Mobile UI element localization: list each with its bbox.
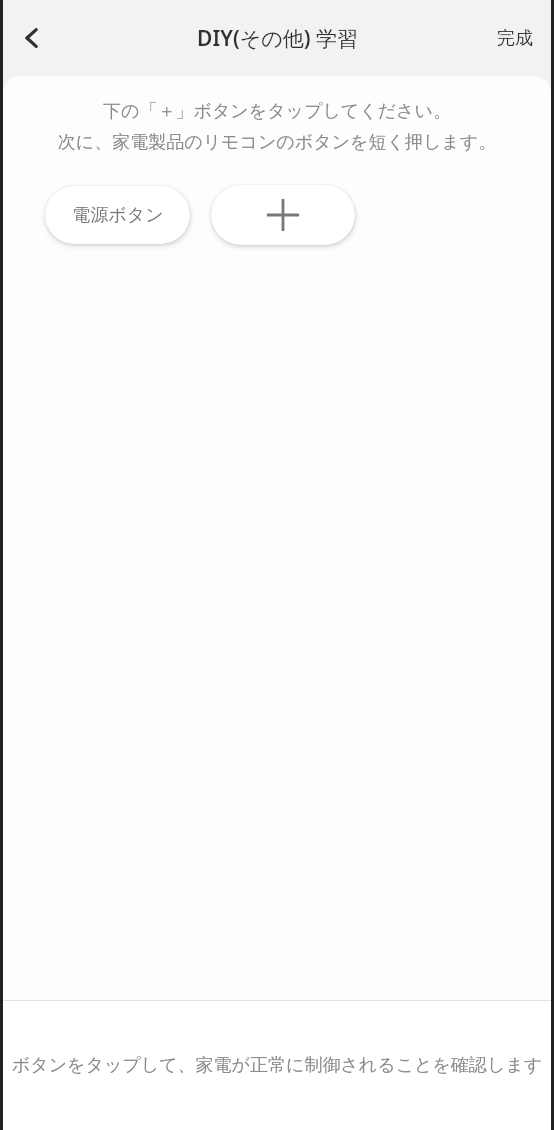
button[interactable]: Back [12,16,56,60]
button[interactable]: 完成 [487,19,543,58]
staticText: 完成 [497,27,533,50]
staticText: 下の「＋」ボタンをタップしてください。 次に、家電製品のリモコンのボタンを短く押… [43,100,511,153]
button[interactable]: 電源ボタン [45,186,190,244]
staticText: DIY(その他) 学習 [197,24,358,53]
staticText: ボタンをタップして、家電が正常に制御されることを確認します [11,1054,543,1077]
button[interactable]: Add button [211,185,355,245]
staticText: 電源ボタン [72,204,164,227]
